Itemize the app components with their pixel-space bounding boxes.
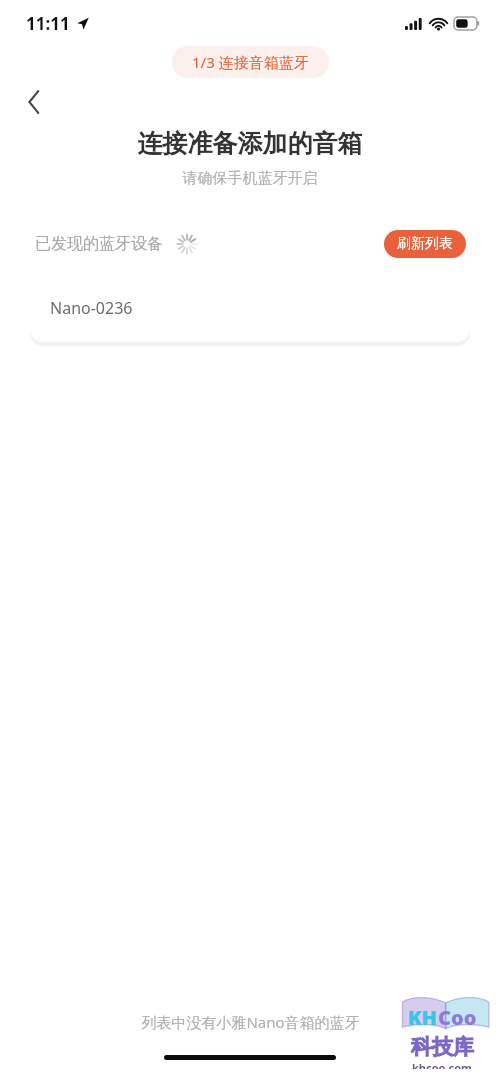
button[interactable]: 列表中没有小雅Nano音箱的蓝牙 [40,1012,460,1032]
button[interactable]: 刷新列表 [384,230,466,258]
staticText: Nano-0236 [50,297,133,319]
button[interactable]: Nano-0236 [30,274,470,342]
staticText: 科技库 [411,1034,474,1060]
button[interactable]: 1/3 连接音箱蓝牙 [172,46,329,78]
button[interactable]: Back [12,80,56,124]
staticText: 已发现的蓝牙设备 [35,234,163,254]
staticText: KH [408,1004,438,1031]
staticText: 1/3 连接音箱蓝牙 [192,52,309,72]
staticText: 刷新列表 [397,235,453,253]
staticText: khcoo.com [412,1060,472,1069]
staticText: 连接准备添加的音箱 [0,128,500,159]
staticText: 请确保手机蓝牙开启 [0,169,500,188]
staticText: 11:11 [26,12,70,35]
staticText: Coo [438,1004,477,1031]
staticText: 列表中没有小雅Nano音箱的蓝牙 [141,1012,360,1032]
